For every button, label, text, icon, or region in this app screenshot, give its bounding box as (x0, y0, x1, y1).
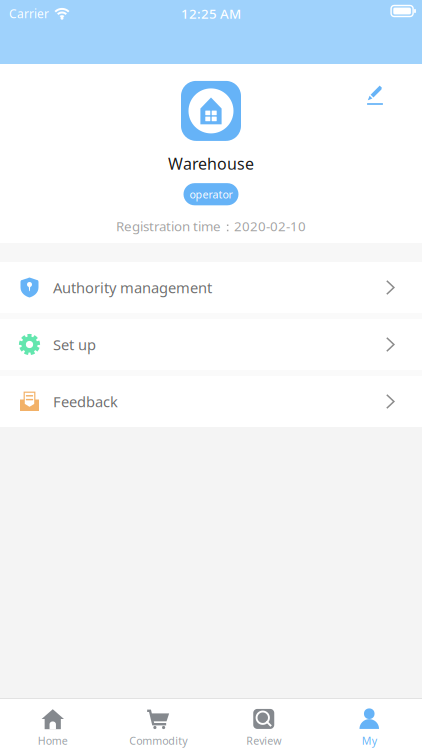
button[interactable]: Authority management (0, 262, 422, 313)
staticText: My (362, 733, 377, 748)
button[interactable]: Edit profile (359, 77, 391, 113)
staticText: Carrier (9, 5, 49, 21)
staticText: Review (246, 733, 281, 748)
staticText: Commodity (129, 733, 187, 748)
staticText: Feedback (53, 392, 118, 411)
button[interactable]: Feedback (0, 376, 422, 427)
staticText: Registration time：2020-02-10 (116, 217, 306, 235)
button[interactable]: Home (0, 698, 105, 750)
button[interactable]: My (316, 698, 422, 750)
staticText: Home (38, 733, 68, 748)
staticText: Authority management (53, 278, 212, 297)
staticText: Set up (53, 335, 96, 354)
button[interactable]: Commodity (105, 698, 211, 750)
staticText: 12:25 AM (181, 5, 241, 22)
button[interactable]: Set up (0, 319, 422, 370)
staticText: operator (189, 187, 232, 201)
staticText: Warehouse (168, 153, 254, 174)
button[interactable]: Review (211, 698, 316, 750)
